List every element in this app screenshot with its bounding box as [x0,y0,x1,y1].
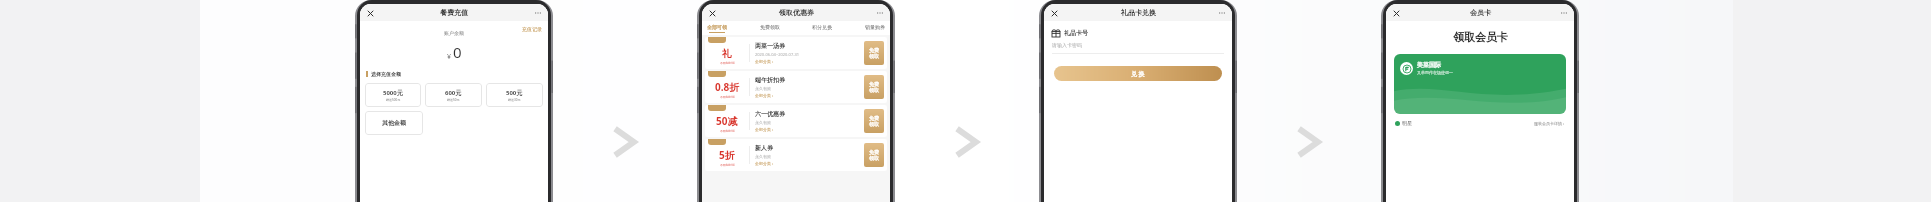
staticText: 免费领取 [760,24,780,30]
button[interactable]: 更多 [1559,8,1569,18]
staticText: 全部分类 › [755,59,774,64]
staticText: 不限制时间 [720,163,735,167]
staticText: 餐费充值 [440,8,468,17]
button[interactable]: 更多 [1217,8,1227,18]
staticText: 全部分类 › [755,161,774,166]
staticText: 免费 [869,47,879,53]
button[interactable]: 全部可领 [705,24,729,33]
staticText: 永久有效 [755,120,771,125]
staticText: 礼 [722,47,732,60]
button[interactable]: 美菜国际 [1394,54,1566,114]
button[interactable]: 下一步 [945,112,989,172]
staticText: 5折 [719,148,735,162]
staticText: 免费 [869,81,879,87]
button[interactable]: 兑 换 [1054,66,1222,81]
staticText: 账户余额 [444,30,464,36]
staticText: 0.8折 [715,80,740,94]
button[interactable]: 5000元 [365,83,421,107]
button[interactable]: 更多 [533,8,543,18]
staticText: 全部可领 [707,24,727,30]
button[interactable]: 礼 [705,37,887,69]
button[interactable]: 关闭 [365,8,375,18]
button[interactable]: 0.8折 [705,71,887,103]
button[interactable]: 5折 [705,139,887,171]
staticText: 领取优惠券 [779,8,814,17]
staticText: 免费 [869,149,879,155]
button[interactable]: 服装会员卡详情 › [1534,121,1565,126]
staticText: 销量购券 [865,24,885,30]
button[interactable]: 50减 [705,105,887,137]
staticText: 选择充值金额 [371,71,401,77]
staticText: 礼品卡兑换 [1121,8,1156,17]
staticText: 积分兑换 [812,24,832,30]
staticText: 5000元 [383,89,403,97]
staticText: 明星 [1402,120,1412,126]
staticText: 全部分类 › [755,93,774,98]
button[interactable]: 免费 [864,143,884,167]
staticText: 500元 [506,89,523,97]
staticText: ¥ [447,52,452,62]
staticText: 不限制时间 [720,95,735,99]
button[interactable]: 销量购券 [863,24,887,33]
staticText: 50减 [716,114,738,128]
staticText: 免费 [869,115,879,121]
button[interactable]: 关闭 [1049,8,1059,18]
button[interactable]: 关闭 [1391,8,1401,18]
button[interactable]: 免费 [864,109,884,133]
staticText: 又单而作在场使强一 [1417,70,1453,75]
staticText: 两菜一汤券 [755,42,785,50]
staticText: 领取 [869,87,879,93]
staticText: 领取会员卡 [1453,30,1508,44]
staticText: 领取 [869,53,879,59]
button[interactable]: 免费 [864,75,884,99]
staticText: 新人券 [755,144,773,152]
staticText: 领取 [869,155,879,161]
staticText: 赠送50元 [447,98,460,102]
staticText: 领取 [869,121,879,127]
staticText: 600元 [445,89,462,97]
button[interactable]: 积分兑换 [810,24,834,33]
staticText: 端午折扣券 [755,76,785,84]
button[interactable]: 500元 [486,83,543,107]
staticText: 全部分类 › [755,127,774,132]
staticText: 赠送30元 [508,98,521,102]
staticText: 2020-06-04~2020-07-31 [755,52,800,57]
button[interactable]: 免费领取 [758,24,782,33]
button[interactable]: 免费 [864,41,884,65]
staticText: 永久有效 [755,154,771,159]
staticText: 永久有效 [755,86,771,91]
button[interactable]: 关闭 [707,8,717,18]
button[interactable]: 600元 [425,83,482,107]
staticText: 其他金额 [382,119,406,127]
staticText: 0 [453,42,462,62]
staticText: 兑 换 [1131,70,1145,78]
button[interactable]: 下一步 [1287,112,1331,172]
staticText: 美菜国际 [1417,61,1441,69]
staticText: 不限制时间 [720,61,735,65]
button[interactable]: 下一步 [603,112,647,172]
button[interactable]: 充值记录 [522,26,542,32]
staticText: 赠送500元 [386,98,401,102]
staticText: 礼品卡号 [1064,29,1088,37]
button[interactable]: 请输入卡密码 [1052,42,1082,48]
button[interactable]: 其他金额 [365,111,423,135]
staticText: 会员卡 [1470,8,1491,17]
staticText: 不限制时间 [720,129,735,133]
button[interactable]: 更多 [875,8,885,18]
staticText: 六一优惠券 [755,110,785,118]
